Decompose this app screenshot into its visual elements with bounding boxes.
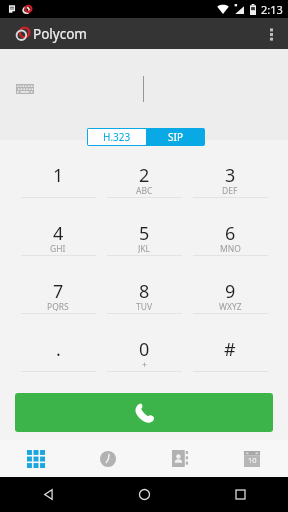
- staticText: 2:13: [261, 2, 283, 17]
- staticText: ABC: [136, 185, 153, 195]
- staticText: WXYZ: [219, 301, 242, 311]
- button[interactable]: Home: [96, 477, 192, 512]
- button[interactable]: 5: [101, 198, 187, 256]
- button[interactable]: Recent apps: [192, 477, 288, 512]
- staticText: 2: [139, 163, 150, 188]
- staticText: 6: [225, 221, 236, 246]
- button[interactable]: Contacts: [144, 440, 216, 477]
- button[interactable]: 9: [187, 256, 273, 314]
- button[interactable]: 7: [15, 256, 101, 314]
- button[interactable]: 3: [187, 140, 273, 198]
- staticText: Polycom: [33, 25, 87, 43]
- staticText: 5: [139, 221, 150, 246]
- staticText: DEF: [222, 185, 238, 195]
- button[interactable]: #: [187, 314, 273, 372]
- button[interactable]: Keyboard: [14, 81, 36, 97]
- staticText: 9: [225, 279, 236, 304]
- staticText: 8: [139, 279, 150, 304]
- staticText: 1: [53, 163, 64, 188]
- staticText: PQRS: [47, 301, 69, 311]
- staticText: .: [56, 337, 61, 362]
- button[interactable]: 4: [15, 198, 101, 256]
- button[interactable]: SIP: [146, 129, 204, 145]
- staticText: GHI: [50, 243, 66, 253]
- button[interactable]: Call: [15, 393, 273, 432]
- staticText: TUV: [136, 301, 153, 311]
- button[interactable]: 0: [101, 314, 187, 372]
- staticText: 7: [53, 279, 64, 304]
- button[interactable]: 6: [187, 198, 273, 256]
- button[interactable]: H.323: [88, 129, 146, 145]
- staticText: JKL: [138, 243, 151, 253]
- staticText: 0: [139, 337, 150, 362]
- button[interactable]: Dialpad: [0, 440, 72, 477]
- button[interactable]: 2: [101, 140, 187, 198]
- button[interactable]: 8: [101, 256, 187, 314]
- button[interactable]: More options: [254, 18, 288, 49]
- button[interactable]: Calendar: [216, 440, 288, 477]
- staticText: #: [224, 337, 236, 362]
- button[interactable]: .: [15, 314, 101, 372]
- button[interactable]: 1: [15, 140, 101, 198]
- staticText: +: [142, 359, 147, 369]
- staticText: 4: [53, 221, 64, 246]
- staticText: H.323: [103, 130, 131, 144]
- staticText: 3: [225, 163, 236, 188]
- staticText: 10: [248, 455, 257, 465]
- staticText: MNO: [220, 243, 241, 253]
- staticText: SIP: [168, 130, 183, 144]
- button[interactable]: Recents: [72, 440, 144, 477]
- button[interactable]: Back: [0, 477, 96, 512]
